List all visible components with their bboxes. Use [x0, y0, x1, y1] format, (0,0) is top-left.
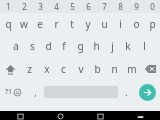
staticText: o: [133, 17, 140, 31]
staticText: 8: [118, 1, 123, 12]
button[interactable]: 2: [16, 0, 32, 13]
staticText: 9: [134, 1, 139, 12]
button[interactable]: v: [72, 57, 89, 81]
button[interactable]: u: [96, 13, 112, 35]
button[interactable]: Send: [134, 81, 160, 103]
staticText: s: [30, 39, 35, 53]
staticText: m: [127, 62, 137, 76]
button[interactable]: q: [0, 13, 16, 35]
button[interactable]: Backspace: [140, 57, 160, 81]
staticText: i: [119, 17, 122, 31]
button[interactable]: 6: [80, 0, 96, 13]
button[interactable]: Menu: [120, 111, 160, 120]
button[interactable]: p: [144, 13, 160, 35]
button[interactable]: f: [56, 35, 72, 57]
button[interactable]: d: [40, 35, 56, 57]
button[interactable]: i: [112, 13, 128, 35]
button[interactable]: h: [88, 35, 104, 57]
button[interactable]: Recents: [80, 111, 120, 120]
button[interactable]: 3: [32, 0, 48, 13]
button[interactable]: m: [123, 57, 140, 81]
staticText: 7: [102, 1, 107, 12]
button[interactable]: 5: [64, 0, 80, 13]
staticText: u: [101, 17, 108, 31]
button[interactable]: b: [89, 57, 106, 81]
staticText: l: [143, 39, 146, 53]
staticText: ?1: [5, 87, 13, 97]
staticText: 5: [70, 1, 75, 12]
button[interactable]: k: [120, 35, 136, 57]
staticText: c: [61, 62, 66, 76]
button[interactable]: l: [136, 35, 152, 57]
button[interactable]: n: [106, 57, 123, 81]
button[interactable]: x: [38, 57, 55, 81]
button[interactable]: ,: [26, 81, 44, 103]
staticText: h: [93, 39, 100, 53]
staticText: j: [111, 39, 114, 53]
button[interactable]: y: [80, 13, 96, 35]
button[interactable]: 7: [96, 0, 112, 13]
button[interactable]: s: [24, 35, 40, 57]
button[interactable]: 8: [112, 0, 128, 13]
staticText: f: [62, 39, 66, 53]
staticText: d: [45, 39, 52, 53]
staticText: t: [70, 17, 74, 31]
staticText: 1: [6, 1, 11, 12]
button[interactable]: 9: [128, 0, 144, 13]
button[interactable]: a: [8, 35, 24, 57]
staticText: k: [125, 39, 131, 53]
button[interactable]: Back: [0, 111, 40, 120]
button[interactable]: 4: [48, 0, 64, 13]
staticText: 0: [150, 1, 155, 12]
staticText: e: [37, 17, 43, 31]
staticText: v: [78, 62, 84, 76]
button[interactable]: Home: [40, 111, 80, 120]
button[interactable]: w: [16, 13, 32, 35]
staticText: ,: [34, 86, 37, 98]
staticText: x: [44, 62, 50, 76]
staticText: g: [77, 39, 84, 53]
button[interactable]: t: [64, 13, 80, 35]
staticText: 3: [38, 1, 43, 12]
button[interactable]: 1: [0, 0, 16, 13]
staticText: p: [149, 17, 156, 31]
staticText: r: [54, 17, 59, 31]
staticText: 6: [86, 1, 91, 12]
button[interactable]: c: [55, 57, 72, 81]
staticText: .: [125, 86, 128, 98]
button[interactable]: r: [48, 13, 64, 35]
staticText: a: [13, 39, 19, 53]
staticText: n: [111, 62, 118, 76]
button[interactable]: 0: [144, 0, 160, 13]
button[interactable]: Shift: [0, 57, 21, 81]
staticText: y: [85, 17, 91, 31]
button[interactable]: .: [118, 81, 134, 103]
staticText: z: [27, 62, 32, 76]
button[interactable]: g: [72, 35, 88, 57]
button[interactable]: z: [21, 57, 38, 81]
button[interactable]: o: [128, 13, 144, 35]
button[interactable]: j: [104, 35, 120, 57]
button[interactable]: Symbols and emoji: [0, 81, 26, 103]
staticText: w: [20, 17, 28, 31]
staticText: 2: [22, 1, 27, 12]
button[interactable]: e: [32, 13, 48, 35]
staticText: q: [5, 17, 12, 31]
staticText: 4: [54, 1, 59, 12]
staticText: b: [94, 62, 101, 76]
